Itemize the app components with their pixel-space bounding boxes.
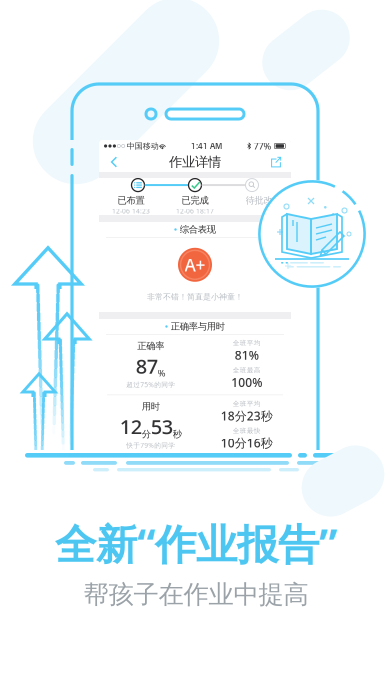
staticText: A+: [184, 253, 205, 276]
staticText: 正确率与用时: [171, 321, 225, 332]
staticText: 帮孩子在作业中提高: [83, 579, 308, 610]
staticText: 12-06 14:23: [112, 207, 150, 215]
staticText: 作业详情: [169, 154, 221, 170]
staticText: 已布置: [117, 195, 144, 206]
staticText: 全班最高: [233, 366, 261, 374]
staticText: 用时: [142, 401, 160, 412]
staticText: 87: [136, 353, 158, 379]
staticText: 已完成: [181, 195, 208, 206]
staticText: 全班平均: [233, 400, 261, 408]
button[interactable]: 分享: [266, 152, 286, 172]
staticText: 非常不错！简直是小神童！: [147, 292, 243, 302]
staticText: 10分16秒: [221, 435, 273, 451]
staticText: 77%: [252, 140, 274, 152]
staticText: %: [158, 367, 166, 379]
staticText: 100%: [231, 374, 262, 390]
staticText: 53: [151, 413, 173, 440]
staticText: 81%: [235, 347, 259, 363]
staticText: 超过75%的同学: [126, 380, 175, 389]
staticText: 12: [120, 413, 142, 440]
staticText: 正确率: [137, 340, 164, 352]
staticText: 秒: [173, 428, 182, 440]
staticText: 18分23秒: [221, 408, 273, 424]
staticText: 综合表现: [180, 224, 216, 235]
staticText: 中国移动: [125, 141, 159, 151]
staticText: 全班平均: [233, 339, 261, 347]
staticText: 12-06 18:17: [176, 207, 214, 215]
staticText: 1:41 AM: [191, 141, 222, 151]
staticText: 待批改: [245, 195, 272, 206]
staticText: 分: [142, 428, 151, 440]
staticText: 全班最快: [233, 427, 261, 435]
staticText: [258, 207, 260, 215]
staticText: 全新“作业报告”: [55, 516, 337, 571]
button[interactable]: 返回: [104, 152, 124, 172]
staticText: 快于79%的同学: [126, 441, 175, 450]
